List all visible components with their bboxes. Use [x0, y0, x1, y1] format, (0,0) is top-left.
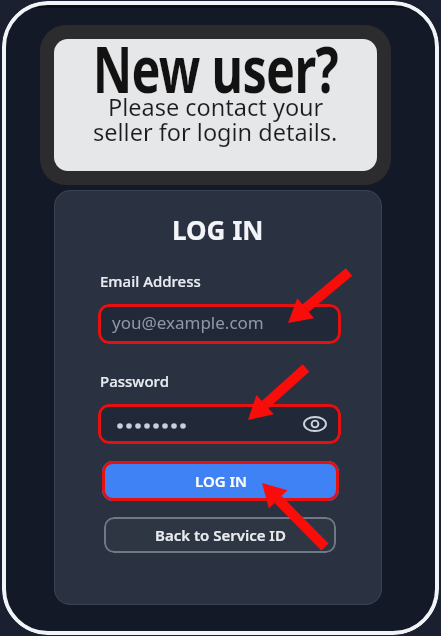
- staticText: Password: [100, 371, 169, 391]
- staticText: LOG IN: [195, 471, 247, 491]
- staticText: Please contact your: [108, 91, 324, 123]
- staticText: Email Address: [100, 271, 201, 291]
- staticText: New user?: [93, 39, 338, 112]
- staticText: you@example.com: [112, 311, 264, 334]
- staticText: LOG IN: [172, 212, 264, 247]
- button[interactable]: you@example.com: [98, 304, 341, 344]
- button[interactable]: Back to Service ID: [104, 517, 336, 553]
- staticText: Back to Service ID: [155, 525, 286, 545]
- button[interactable]: [98, 404, 341, 444]
- button[interactable]: LOG IN: [102, 461, 339, 501]
- staticText: seller for login details.: [93, 116, 338, 148]
